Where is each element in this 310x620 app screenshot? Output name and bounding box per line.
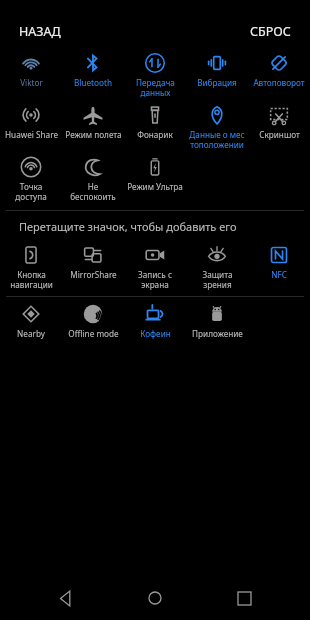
button[interactable]: СБРОС [242, 23, 310, 40]
staticText: Режим полета [65, 129, 122, 140]
button[interactable]: Back [43, 576, 89, 620]
staticText: Кофеин [140, 328, 171, 339]
staticText: Offline mode [68, 328, 119, 339]
staticText: Перетащите значок, чтобы добавить его [19, 219, 237, 234]
button[interactable]: Точка доступа [0, 154, 62, 206]
button[interactable]: Вибрация [186, 50, 248, 102]
button[interactable]: Передача данных [124, 50, 186, 102]
button[interactable]: Защита зрения [186, 242, 248, 294]
button[interactable]: Bluetooth [62, 50, 124, 102]
staticText: Передача данных [136, 77, 175, 98]
staticText: Режим Ультра [127, 181, 183, 192]
button[interactable]: Автоповорот [248, 50, 310, 102]
staticText: Точка доступа [15, 181, 47, 202]
button[interactable]: NFC [248, 242, 310, 294]
button[interactable]: Huawei Share [0, 102, 62, 154]
button[interactable]: Viktor [0, 50, 62, 102]
staticText: Вибрация [197, 77, 237, 88]
button[interactable]: Данные о мес тоположении [186, 102, 248, 154]
button[interactable]: Кофеин [124, 301, 186, 353]
button[interactable]: Home [132, 576, 178, 620]
button[interactable]: Запись с экрана [124, 242, 186, 294]
staticText: Viktor [20, 77, 43, 88]
button[interactable]: Режим Ультра [124, 154, 186, 206]
staticText: Приложение [192, 328, 243, 339]
staticText: Защита зрения [202, 269, 233, 290]
staticText: Не беспокоить [70, 181, 116, 202]
staticText: Кнопка навигации [10, 269, 53, 290]
button[interactable]: Не беспокоить [62, 154, 124, 206]
staticText: Huawei Share [5, 129, 58, 140]
button[interactable]: Offline mode [62, 301, 124, 353]
button[interactable]: НАЗАД [0, 23, 69, 40]
button[interactable]: Recents [221, 576, 267, 620]
button[interactable]: Приложение [186, 301, 248, 353]
button[interactable]: Режим полета [62, 102, 124, 154]
button[interactable]: Кнопка навигации [0, 242, 62, 294]
staticText: NFC [271, 269, 287, 280]
staticText: Запись с экрана [138, 269, 172, 290]
staticText: Автоповорот [253, 77, 305, 88]
staticText: MirrorShare [70, 269, 117, 280]
staticText: Фонарик [137, 129, 173, 140]
staticText: Nearby [17, 328, 45, 339]
button[interactable]: Nearby [0, 301, 62, 353]
staticText: НАЗАД [19, 23, 61, 40]
button[interactable]: Скриншот [248, 102, 310, 154]
button[interactable]: Фонарик [124, 102, 186, 154]
button[interactable]: MirrorShare [62, 242, 124, 294]
staticText: Скриншот [259, 129, 300, 140]
staticText: Данные о мес тоположении [189, 129, 245, 150]
staticText: Bluetooth [74, 77, 112, 88]
staticText: СБРОС [250, 23, 291, 40]
